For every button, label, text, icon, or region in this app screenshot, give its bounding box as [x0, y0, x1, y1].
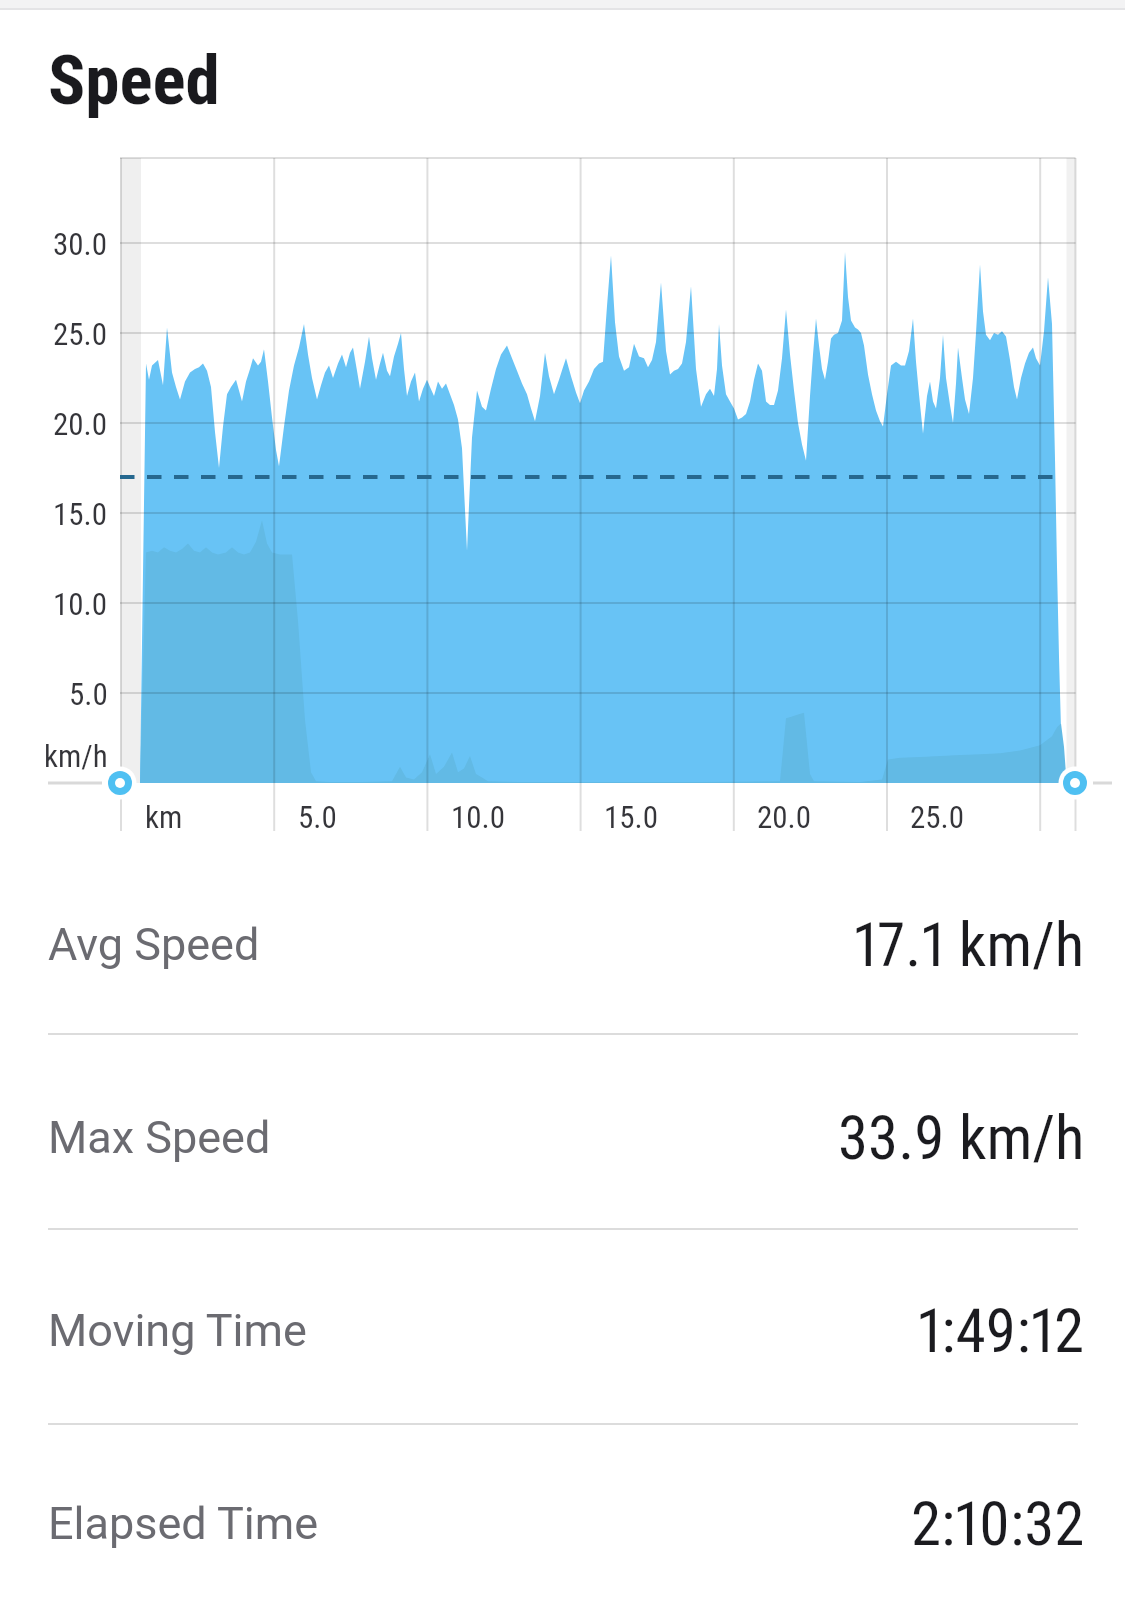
staticText: 20.0	[53, 406, 108, 442]
staticText: Avg Speed	[48, 918, 260, 971]
staticText: 5.0	[298, 799, 337, 835]
staticText: 10.0	[451, 799, 506, 835]
staticText: Elapsed Time	[48, 1497, 319, 1550]
staticText: 5.0	[69, 676, 108, 712]
button[interactable]	[0, 0, 1125, 860]
staticText: Moving Time	[48, 1304, 307, 1357]
staticText: 2:10:32	[911, 1488, 1085, 1559]
staticText: 30.0	[53, 226, 108, 262]
staticText: km	[145, 799, 183, 835]
button[interactable]: Moving Time	[0, 1282, 1125, 1378]
button[interactable]: Max Speed	[0, 1089, 1125, 1185]
staticText: 20.0	[757, 799, 812, 835]
staticText: 25.0	[910, 799, 965, 835]
staticText: 25.0	[53, 316, 108, 352]
staticText: 33.9 km/h	[838, 1102, 1085, 1173]
staticText: 10.0	[53, 586, 108, 622]
staticText: 17.1 km/h	[854, 909, 1085, 980]
button[interactable]: Avg Speed	[0, 896, 1125, 992]
button[interactable]: Elapsed Time	[0, 1475, 1125, 1571]
staticText: 15.0	[604, 799, 659, 835]
staticText: Speed	[48, 40, 220, 121]
staticText: Max Speed	[48, 1111, 271, 1164]
staticText: 15.0	[53, 496, 108, 532]
staticText: 1:49:12	[918, 1295, 1085, 1366]
staticText: km/h	[44, 738, 108, 774]
